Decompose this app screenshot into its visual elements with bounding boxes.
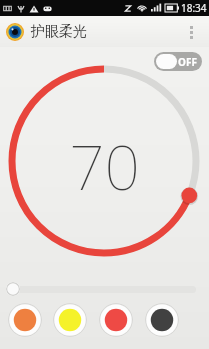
button[interactable]: Dark filter <box>145 303 179 337</box>
button[interactable]: Orange filter <box>8 303 42 337</box>
staticText: OFF <box>178 55 197 69</box>
staticText: 护眼柔光 <box>31 23 87 41</box>
button[interactable]: More options <box>179 20 203 44</box>
button[interactable] <box>13 282 196 296</box>
staticText: 70 <box>69 124 140 208</box>
button[interactable]: OFF <box>154 52 202 71</box>
button[interactable]: Yellow filter <box>53 303 87 337</box>
staticText: 18:34 <box>181 1 207 15</box>
button[interactable]: Red filter <box>99 303 133 337</box>
